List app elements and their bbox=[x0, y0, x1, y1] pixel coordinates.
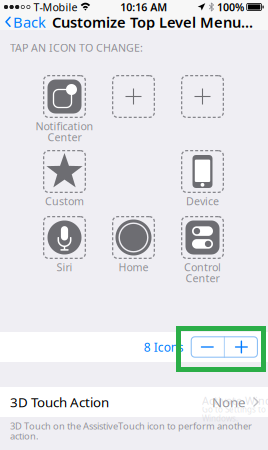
staticText: Go to Settings to activate bbox=[202, 404, 268, 415]
button[interactable]: Home bbox=[112, 216, 155, 259]
staticText: 3D Touch Action bbox=[10, 393, 109, 411]
button[interactable]: Add icon bbox=[225, 336, 258, 358]
staticText: 100% bbox=[217, 0, 244, 14]
staticText: Notification bbox=[35, 119, 93, 133]
button[interactable]: Remove icon bbox=[191, 336, 224, 358]
staticText: 3D Touch on the AssistiveTouch icon to p… bbox=[10, 420, 252, 432]
staticText: T-Mobile bbox=[33, 0, 77, 14]
staticText: Siri bbox=[56, 260, 72, 274]
staticText: Windows. bbox=[202, 413, 238, 424]
button[interactable]: Control bbox=[181, 216, 224, 259]
button[interactable]: Add icon bbox=[181, 75, 224, 118]
button[interactable]: 3D Touch Action bbox=[0, 387, 268, 417]
staticText: Customize Top Level Menu... bbox=[52, 12, 253, 32]
button[interactable]: Siri bbox=[43, 216, 86, 259]
button[interactable]: Back bbox=[0, 14, 46, 30]
staticText: Device bbox=[186, 194, 219, 208]
staticText: Center bbox=[47, 130, 81, 144]
button[interactable]: Add icon bbox=[112, 75, 155, 118]
staticText: Activate Windows bbox=[202, 393, 268, 408]
button[interactable]: Custom bbox=[43, 150, 86, 193]
staticText: 10:16 AM bbox=[120, 0, 167, 14]
staticText: None bbox=[212, 393, 246, 411]
staticText: Control bbox=[184, 260, 221, 274]
staticText: Home bbox=[118, 260, 148, 274]
button[interactable]: Notification bbox=[43, 75, 86, 118]
staticText: Center bbox=[185, 271, 219, 285]
button[interactable]: Device bbox=[181, 150, 224, 193]
staticText: Custom bbox=[45, 194, 84, 208]
staticText: TAP AN ICON TO CHANGE: bbox=[10, 40, 143, 55]
staticText: action. bbox=[10, 430, 39, 442]
staticText: 8 Icons bbox=[144, 339, 184, 355]
staticText: Back bbox=[13, 12, 46, 32]
